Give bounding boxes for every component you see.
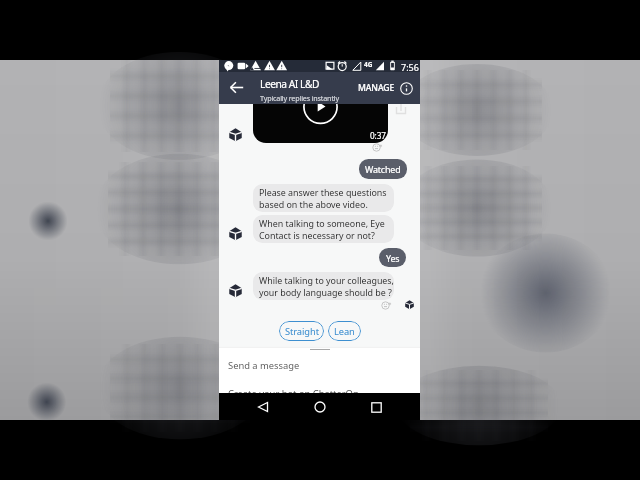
staticText: Watched	[365, 163, 401, 175]
staticText: Lean	[334, 325, 355, 338]
staticText: Leena AI L&D	[260, 77, 319, 91]
staticText: Create your bot on ChatterOn	[228, 387, 359, 400]
button[interactable]: While talking to your colleagues,	[253, 272, 394, 300]
button[interactable]: Lean	[328, 321, 361, 341]
button[interactable]: Yes	[379, 248, 406, 267]
staticText: based on the above video.	[259, 198, 368, 210]
button[interactable]: Back	[251, 395, 275, 419]
button[interactable]: Recent apps	[364, 395, 388, 419]
staticText: Please answer these questions	[259, 186, 387, 198]
button[interactable]: Watched	[359, 159, 407, 179]
button[interactable]: Back	[221, 72, 251, 102]
staticText: Yes	[386, 252, 400, 264]
button[interactable]: MANAGE	[355, 72, 398, 104]
staticText: Contact is necessary or not?	[259, 229, 375, 241]
button[interactable]: Play video	[253, 85, 388, 143]
staticText: When talking to someone, Eye	[259, 217, 385, 229]
button[interactable]: When talking to someone, Eye	[253, 215, 394, 243]
staticText: MANAGE	[358, 82, 395, 94]
staticText: While talking to your colleagues,	[259, 274, 394, 286]
staticText: Straight	[285, 325, 319, 338]
button[interactable]: Info	[396, 78, 416, 98]
staticText: Send a message	[228, 359, 300, 372]
staticText: 7:56	[401, 61, 419, 73]
button[interactable]: Please answer these questions	[253, 184, 394, 212]
button[interactable]: Home	[308, 395, 332, 419]
staticText: 0:37	[370, 130, 386, 141]
staticText: 4G	[364, 60, 373, 69]
staticText: Typically replies instantly	[260, 93, 339, 103]
button[interactable]: Straight	[279, 321, 324, 341]
staticText: your body language should be ?	[259, 286, 392, 298]
